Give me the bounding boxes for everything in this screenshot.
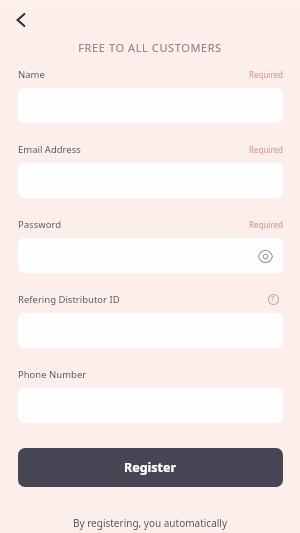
button[interactable]	[18, 238, 283, 273]
staticText: Email Address	[18, 143, 81, 156]
button[interactable]: Show password	[252, 243, 278, 269]
staticText: Required	[249, 144, 283, 155]
staticText: ?	[271, 294, 275, 304]
staticText: By registering, you automatically	[0, 516, 300, 530]
staticText: Register	[124, 459, 177, 476]
staticText: Password	[18, 218, 61, 231]
button[interactable]: Register	[18, 448, 283, 487]
staticText: FREE TO ALL CUSTOMERS	[0, 40, 300, 55]
staticText: Required	[249, 219, 283, 230]
staticText: Name	[18, 68, 45, 81]
button[interactable]: Back	[5, 3, 39, 37]
staticText: Required	[249, 69, 283, 80]
staticText: Refering Distributor ID	[18, 293, 120, 306]
staticText: Phone Number	[18, 368, 87, 381]
button[interactable]: Help about referring distributor ID	[262, 288, 284, 310]
